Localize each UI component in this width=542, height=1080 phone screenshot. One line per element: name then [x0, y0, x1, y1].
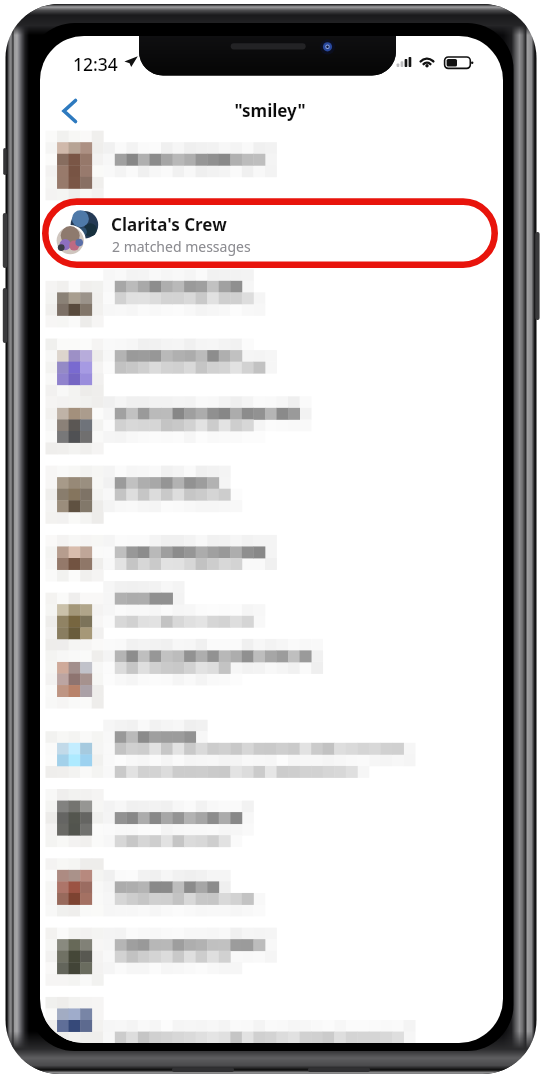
button[interactable]: Back [56, 92, 90, 128]
staticText: 2 matched messages [112, 237, 251, 256]
staticText: Clarita's Crew [111, 213, 227, 236]
button[interactable]: Clarita's Crew [50, 203, 490, 265]
staticText: 12:34 [73, 52, 118, 76]
staticText: "smiley" [170, 99, 370, 122]
